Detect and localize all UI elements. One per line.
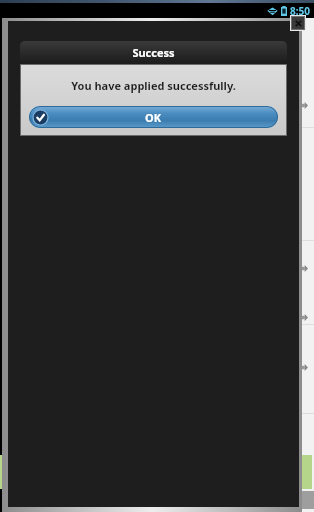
button[interactable]: Close	[291, 16, 305, 30]
staticText: OK	[145, 110, 162, 125]
staticText: Success	[132, 45, 175, 60]
staticText: You have applied successfully.	[71, 78, 236, 93]
button[interactable]: OK	[29, 106, 278, 128]
staticText: 8:50	[290, 4, 310, 18]
